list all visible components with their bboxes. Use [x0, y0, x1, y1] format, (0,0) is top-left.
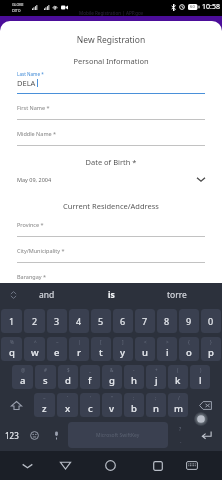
staticText: Personal Information	[0, 56, 222, 66]
staticText: torre	[167, 289, 187, 301]
staticText: m	[174, 402, 183, 415]
button[interactable]: First Name *	[17, 94, 205, 120]
staticText: b	[131, 402, 137, 415]
button[interactable]: @	[12, 365, 33, 389]
staticText: 6	[120, 315, 126, 327]
button[interactable]: 5	[91, 309, 111, 333]
staticText: ;	[155, 395, 157, 401]
button[interactable]: Keyboard settings	[0, 283, 26, 307]
staticText: Mobile Registration | APP.gov	[79, 10, 143, 16]
button[interactable]: ^	[24, 337, 45, 361]
button[interactable]: <	[135, 337, 155, 361]
button[interactable]: _	[80, 365, 100, 389]
staticText: ^	[34, 339, 37, 345]
staticText: g	[109, 374, 115, 387]
staticText: d	[65, 374, 71, 387]
button[interactable]: Voice input	[45, 419, 67, 451]
staticText: ~	[43, 395, 46, 401]
staticText: s	[43, 374, 48, 387]
button[interactable]: 1	[1, 309, 22, 333]
staticText: x	[65, 402, 71, 415]
button[interactable]: >	[157, 337, 177, 361]
staticText: {	[188, 339, 190, 345]
button[interactable]: $	[58, 365, 78, 389]
button[interactable]: Microsoft SwiftKey	[68, 422, 168, 448]
button[interactable]: ]	[113, 337, 133, 361]
button[interactable]: Backspace	[189, 391, 222, 419]
staticText: May 09, 2004	[17, 176, 52, 183]
staticText: Date of Birth *	[0, 157, 222, 167]
button[interactable]: Hide keyboard	[5, 451, 49, 480]
button[interactable]: and	[14, 283, 79, 307]
staticText: and	[39, 289, 55, 301]
button[interactable]: }	[201, 337, 221, 361]
button[interactable]: |	[69, 337, 89, 361]
button[interactable]: 3	[47, 309, 67, 333]
staticText: 10:58	[202, 2, 220, 12]
button[interactable]: :	[124, 393, 144, 417]
button[interactable]: is	[79, 283, 144, 307]
button[interactable]: 0	[201, 309, 221, 333]
button[interactable]: `	[57, 393, 78, 417]
staticText: $	[67, 367, 70, 373]
staticText: t	[99, 346, 103, 359]
button[interactable]: 4	[69, 309, 89, 333]
button[interactable]: )	[190, 365, 210, 389]
button[interactable]: #	[35, 365, 56, 389]
staticText: f	[88, 374, 92, 387]
button[interactable]: 8	[157, 309, 177, 333]
staticText: +	[155, 367, 158, 373]
button[interactable]: Back	[43, 451, 87, 480]
staticText: &	[110, 367, 114, 373]
button[interactable]: Home	[88, 451, 132, 480]
button[interactable]: ~	[47, 337, 67, 361]
button[interactable]: Emoji	[24, 419, 45, 451]
button[interactable]: torre	[144, 283, 209, 307]
button[interactable]: (	[168, 365, 188, 389]
button[interactable]: &	[102, 365, 122, 389]
staticText: v	[109, 402, 115, 415]
button[interactable]: %	[1, 337, 22, 361]
button[interactable]: 9	[179, 309, 199, 333]
button[interactable]: Barangay *	[17, 263, 205, 283]
staticText: @	[21, 367, 26, 373]
staticText: (	[177, 367, 179, 373]
button[interactable]: {	[179, 337, 199, 361]
button[interactable]: 6	[113, 309, 133, 333]
button[interactable]: Shift	[0, 391, 33, 419]
button[interactable]: +	[146, 365, 166, 389]
button[interactable]: City/Municipality *	[17, 237, 205, 263]
staticText: _	[89, 367, 92, 373]
staticText: 7	[142, 315, 148, 327]
staticText: 1	[9, 315, 15, 327]
button[interactable]: -	[124, 365, 144, 389]
button[interactable]: ~	[34, 393, 55, 417]
button[interactable]: May 09, 2004	[17, 174, 205, 185]
staticText: 60	[190, 4, 195, 10]
button[interactable]: 123	[0, 419, 24, 451]
staticText: j	[155, 374, 158, 387]
button[interactable]: [	[91, 337, 111, 361]
button[interactable]: ;	[146, 393, 166, 417]
staticText: z	[42, 402, 47, 415]
button[interactable]: Enter	[191, 419, 222, 451]
staticText: '	[90, 395, 92, 401]
button[interactable]: "	[102, 393, 122, 417]
staticText: e	[54, 346, 60, 359]
button[interactable]: Recents	[136, 451, 180, 480]
button[interactable]: 2	[24, 309, 45, 333]
button[interactable]: 7	[135, 309, 155, 333]
staticText: :	[133, 395, 135, 401]
staticText: q	[9, 346, 15, 359]
button[interactable]: Middle Name *	[17, 120, 205, 146]
button[interactable]: '	[80, 393, 100, 417]
staticText: Middle Name *	[17, 130, 57, 137]
staticText: h	[131, 374, 137, 387]
button[interactable]: Province *	[17, 211, 205, 237]
button[interactable]: Last Name *	[17, 71, 205, 94]
button[interactable]: /	[168, 393, 188, 417]
staticText: y	[120, 346, 126, 359]
staticText: i	[166, 346, 169, 359]
button[interactable]: Switch keyboard	[170, 451, 214, 480]
